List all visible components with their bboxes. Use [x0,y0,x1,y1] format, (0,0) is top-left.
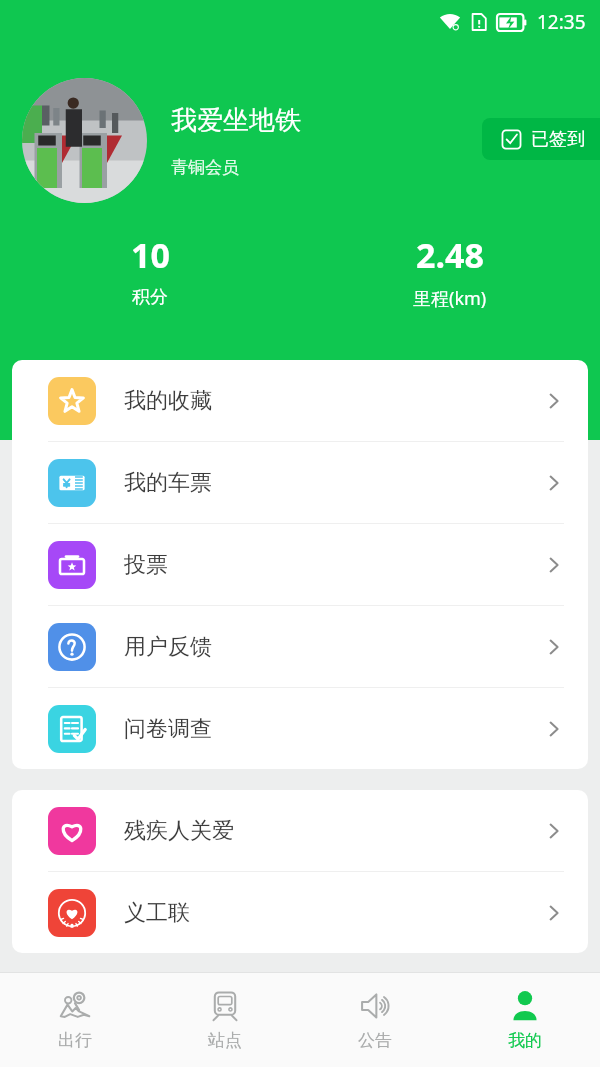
staticText: 里程(km) [413,286,487,311]
staticText: 2.48 [416,232,484,278]
staticText: 我的收藏 [124,387,212,415]
staticText: 10 [131,232,170,278]
button[interactable]: 已签到 [482,118,600,160]
button[interactable]: 我的 [450,973,600,1067]
staticText: 用户反馈 [124,633,212,661]
staticText: 积分 [132,286,168,309]
button[interactable]: 残疾人关爱 [12,790,588,871]
button[interactable]: 用户反馈 [12,606,588,687]
staticText: 我的 [508,1030,542,1051]
staticText: 我爱坐地铁 [171,104,301,137]
button[interactable]: 出行 [0,973,150,1067]
staticText: 青铜会员 [171,157,239,178]
button[interactable]: 公告 [300,973,450,1067]
button[interactable]: 问卷调查 [12,688,588,769]
staticText: 我的车票 [124,469,212,497]
staticText: 义工联 [124,899,190,927]
staticText: 投票 [124,551,168,579]
staticText: 站点 [208,1030,242,1051]
button[interactable]: 义工联 [12,872,588,953]
staticText: 12:35 [537,9,586,35]
button[interactable]: 我的收藏 [12,360,588,441]
staticText: 已签到 [531,128,585,151]
staticText: 残疾人关爱 [124,817,234,845]
button[interactable]: 站点 [150,973,300,1067]
button[interactable]: 我的车票 [12,442,588,523]
staticText: 问卷调查 [124,715,212,743]
button[interactable]: 投票 [12,524,588,605]
staticText: 公告 [358,1030,392,1051]
staticText: 出行 [58,1030,92,1051]
